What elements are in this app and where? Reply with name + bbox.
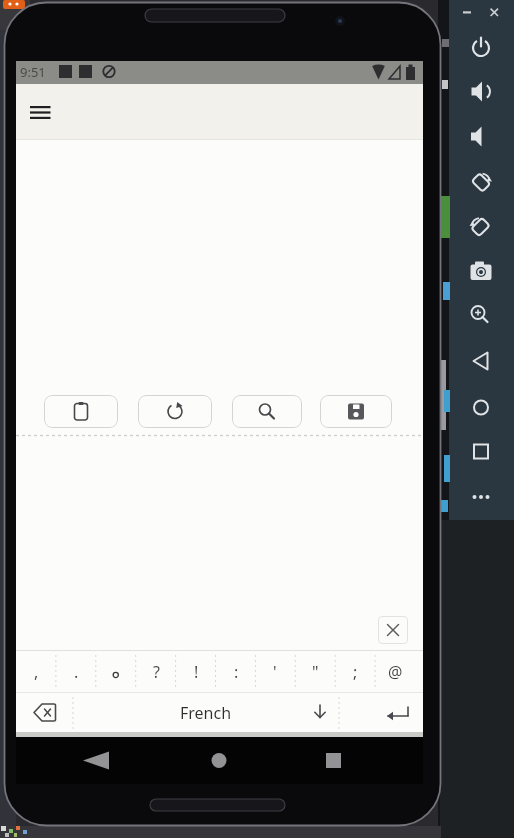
button[interactable]: ! xyxy=(176,651,216,692)
staticText: French xyxy=(180,702,232,724)
button[interactable] xyxy=(463,166,499,198)
button[interactable]: " xyxy=(295,651,335,692)
staticText: 9:51 xyxy=(20,63,46,81)
staticText: ! xyxy=(194,661,199,683)
staticText: @ xyxy=(388,661,403,683)
staticText: ? xyxy=(153,661,160,683)
staticText: : xyxy=(234,661,239,683)
button[interactable]: @ xyxy=(375,651,415,692)
button[interactable] xyxy=(56,738,136,783)
staticText: ' xyxy=(273,661,277,683)
staticText: ; xyxy=(353,661,358,683)
button[interactable] xyxy=(44,395,118,428)
button[interactable] xyxy=(179,738,259,783)
button[interactable] xyxy=(486,4,504,20)
button[interactable]: ' xyxy=(255,651,295,692)
button[interactable]: : xyxy=(216,651,256,692)
button[interactable] xyxy=(463,211,499,243)
staticText: , xyxy=(34,661,39,683)
button[interactable] xyxy=(378,616,408,644)
button[interactable] xyxy=(293,738,373,783)
button[interactable]: French xyxy=(73,693,339,732)
button[interactable] xyxy=(138,395,212,428)
button[interactable] xyxy=(96,651,136,692)
button[interactable] xyxy=(463,299,499,331)
button[interactable] xyxy=(463,75,499,107)
button[interactable] xyxy=(463,481,499,513)
button[interactable]: , xyxy=(16,651,56,692)
button[interactable] xyxy=(232,395,302,428)
staticText: " xyxy=(312,661,319,683)
button[interactable]: ; xyxy=(335,651,375,692)
button[interactable] xyxy=(16,693,73,732)
button[interactable] xyxy=(463,255,499,287)
button[interactable] xyxy=(463,435,499,467)
button[interactable] xyxy=(463,345,499,377)
button[interactable] xyxy=(463,120,499,152)
button[interactable] xyxy=(458,4,476,20)
button[interactable] xyxy=(463,31,499,63)
button[interactable]: . xyxy=(56,651,96,692)
staticText: . xyxy=(74,661,79,683)
button[interactable] xyxy=(463,391,499,423)
button[interactable] xyxy=(320,395,392,428)
button[interactable]: ? xyxy=(136,651,176,692)
button[interactable] xyxy=(339,693,423,732)
button[interactable] xyxy=(18,90,66,134)
